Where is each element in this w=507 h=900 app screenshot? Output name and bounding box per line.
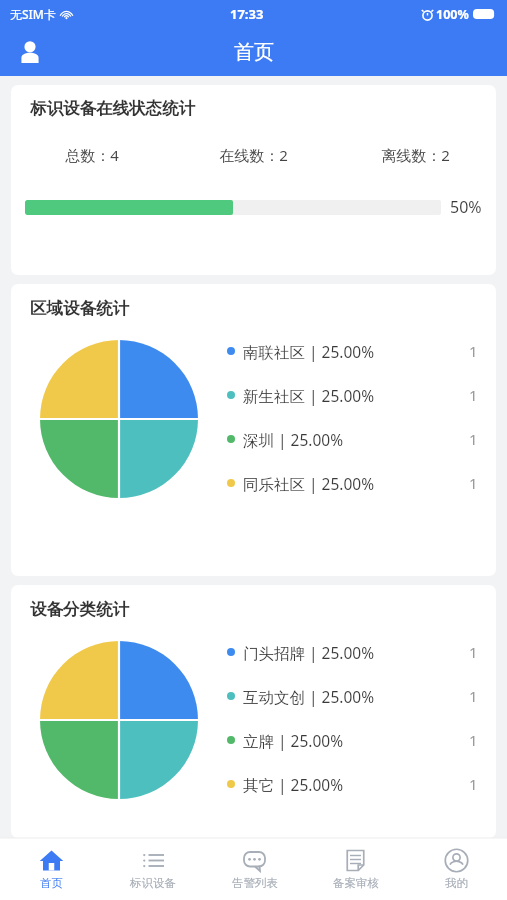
staticText: 离线数：2 — [381, 145, 450, 165]
button[interactable]: 其它 | 25.00% — [227, 762, 478, 806]
staticText: 区域设备统计 — [30, 298, 129, 319]
button[interactable]: User profile — [8, 30, 52, 74]
staticText: 在线数：2 — [219, 145, 288, 165]
staticText: 100% — [436, 6, 469, 23]
staticText: 首页 — [234, 40, 274, 65]
button[interactable]: 我的 — [406, 838, 507, 900]
button[interactable]: 同乐社区 | 25.00% — [227, 461, 478, 505]
staticText: 我的 — [445, 876, 468, 890]
staticText: 1 — [469, 642, 478, 662]
staticText: 设备分类统计 — [30, 599, 129, 620]
staticText: 备案审核 — [333, 876, 379, 890]
staticText: 告警列表 — [232, 876, 278, 890]
staticText: 首页 — [40, 876, 63, 890]
staticText: 无SIM卡 — [10, 6, 56, 22]
button[interactable]: 立牌 | 25.00% — [227, 718, 478, 762]
button[interactable]: 门头招牌 | 25.00% — [227, 630, 478, 674]
staticText: 其它 | 25.00% — [243, 774, 344, 795]
staticText: 1 — [469, 730, 478, 750]
staticText: 门头招牌 | 25.00% — [243, 642, 375, 663]
staticText: 1 — [469, 473, 478, 493]
button[interactable]: 备案审核 — [305, 838, 406, 900]
staticText: 标识设备 — [130, 876, 176, 890]
staticText: 总数：4 — [65, 145, 119, 165]
staticText: 同乐社区 | 25.00% — [243, 473, 375, 494]
staticText: 50% — [450, 196, 482, 218]
staticText: 南联社区 | 25.00% — [243, 341, 375, 362]
staticText: 新生社区 | 25.00% — [243, 385, 375, 406]
button[interactable]: 首页 — [0, 838, 102, 900]
button[interactable]: 互动文创 | 25.00% — [227, 674, 478, 718]
staticText: 深圳 | 25.00% — [243, 429, 344, 450]
staticText: 1 — [469, 385, 478, 405]
staticText: 立牌 | 25.00% — [243, 730, 344, 751]
staticText: 17:33 — [230, 5, 264, 23]
staticText: 1 — [469, 686, 478, 706]
button[interactable]: 深圳 | 25.00% — [227, 417, 478, 461]
staticText: 1 — [469, 341, 478, 361]
button[interactable]: 告警列表 — [204, 838, 305, 900]
staticText: 1 — [469, 774, 478, 794]
button[interactable]: 南联社区 | 25.00% — [227, 329, 478, 373]
staticText: 互动文创 | 25.00% — [243, 686, 375, 707]
staticText: 标识设备在线状态统计 — [30, 98, 195, 119]
button[interactable]: 标识设备 — [102, 838, 204, 900]
button[interactable]: 新生社区 | 25.00% — [227, 373, 478, 417]
staticText: 1 — [469, 429, 478, 449]
